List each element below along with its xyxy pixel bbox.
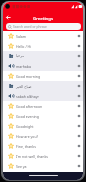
button[interactable]: More options <box>76 153 82 159</box>
button[interactable]: How are you? <box>3 131 83 141</box>
button[interactable]: More options <box>76 123 82 129</box>
staticText: Goodnight <box>16 124 34 129</box>
button[interactable]: Good evening <box>3 111 83 121</box>
button[interactable]: See ya <box>3 161 83 171</box>
button[interactable]: marhaba <box>3 61 83 71</box>
button[interactable]: Back <box>4 13 13 22</box>
button[interactable]: صباح الخير <box>3 81 83 91</box>
button[interactable]: More options <box>76 133 82 139</box>
button[interactable]: Salam <box>3 31 83 41</box>
button[interactable]: Goodnight <box>3 121 83 131</box>
staticText: Fine, thanks <box>16 144 36 149</box>
staticText: Search word or phrase <box>13 25 47 29</box>
staticText: Good morning <box>16 74 41 79</box>
staticText: I'm not well, thanks <box>16 154 48 159</box>
button[interactable]: More options <box>76 103 82 109</box>
button[interactable]: More options <box>76 73 82 79</box>
button[interactable]: More options <box>76 163 82 169</box>
staticText: صباح الخير <box>16 84 32 89</box>
button[interactable]: More options <box>76 143 82 149</box>
staticText: Good afternoon <box>16 104 43 109</box>
staticText: Salam <box>16 34 27 39</box>
staticText: sabah alkhayr <box>16 94 39 99</box>
staticText: Greetings <box>33 15 54 21</box>
button[interactable]: Good morning <box>3 71 83 81</box>
button[interactable]: More options <box>76 43 82 49</box>
button[interactable]: مرحبا <box>3 51 83 61</box>
staticText: marhaba <box>16 64 31 69</box>
button[interactable]: More options <box>76 113 82 119</box>
button[interactable]: More options <box>76 93 82 99</box>
button[interactable]: Hello / Hi <box>3 41 83 51</box>
button[interactable]: sabah alkhayr <box>3 91 83 101</box>
button[interactable]: I'm not well, thanks <box>3 151 83 161</box>
staticText: مرحبا <box>16 54 25 58</box>
button[interactable]: Search word or phrase <box>6 23 81 30</box>
button[interactable]: More options <box>76 63 82 69</box>
staticText: How are you? <box>16 134 39 139</box>
staticText: See ya <box>16 164 27 169</box>
button[interactable]: Fine, thanks <box>3 141 83 151</box>
button[interactable]: More options <box>76 83 82 89</box>
staticText: Hello / Hi <box>16 44 32 49</box>
button[interactable]: More options <box>76 33 82 39</box>
button[interactable]: More options <box>76 53 82 59</box>
button[interactable]: Good afternoon <box>3 101 83 111</box>
staticText: Good evening <box>16 114 39 119</box>
